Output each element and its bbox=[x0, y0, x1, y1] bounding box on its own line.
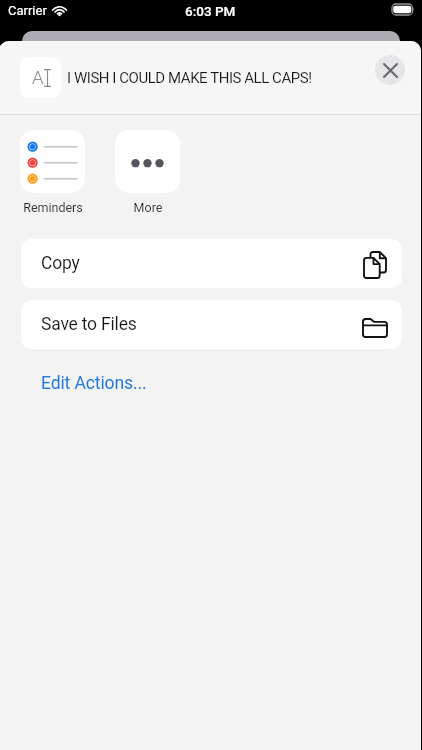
staticText: I WISH I COULD MAKE THIS ALL CAPS! bbox=[67, 69, 312, 87]
button[interactable]: More bbox=[115, 130, 181, 193]
button[interactable]: Copy bbox=[21, 239, 402, 288]
button[interactable]: Close bbox=[375, 55, 405, 85]
button[interactable]: Edit Actions... bbox=[22, 368, 166, 399]
staticText: More bbox=[115, 200, 181, 215]
staticText: Reminders bbox=[20, 200, 86, 215]
button[interactable]: Save to Files bbox=[21, 300, 402, 349]
staticText: Copy bbox=[41, 253, 80, 274]
staticText: Edit Actions... bbox=[41, 373, 147, 394]
staticText: 6:03 PM bbox=[185, 3, 236, 19]
staticText: Carrier bbox=[8, 3, 47, 18]
staticText: Save to Files bbox=[41, 314, 137, 335]
staticText: A bbox=[32, 67, 44, 89]
button[interactable]: Reminders bbox=[20, 130, 86, 193]
